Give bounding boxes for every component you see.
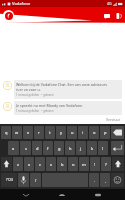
- staticText: b: [61, 162, 64, 167]
- button[interactable]: Shift: [1, 157, 12, 171]
- button[interactable]: Welkom bij de Vodafone Chat. Een van onz…: [3, 80, 122, 99]
- button[interactable]: w: [12, 126, 22, 139]
- button[interactable]: v: [46, 157, 56, 171]
- button[interactable]: Shift right: [112, 157, 124, 171]
- button[interactable]: Backspace: [111, 126, 124, 139]
- staticText: c: [39, 162, 41, 167]
- staticText: e: [27, 130, 30, 135]
- staticText: l: [102, 146, 104, 151]
- staticText: ?123: [6, 178, 13, 182]
- button[interactable]: p: [100, 126, 110, 139]
- button[interactable]: c: [35, 157, 45, 171]
- staticText: a: [12, 146, 15, 151]
- button[interactable]: d: [32, 141, 42, 155]
- staticText: o: [93, 130, 96, 135]
- staticText: n: [72, 162, 75, 167]
- button[interactable]: n: [68, 157, 78, 171]
- staticText: ,: [105, 178, 106, 183]
- staticText: r: [38, 130, 40, 135]
- staticText: Vodafone: [12, 1, 31, 6]
- button[interactable]: y: [56, 126, 66, 139]
- staticText: is er zo voor u.: [16, 87, 41, 92]
- staticText: s: [25, 146, 27, 151]
- button[interactable]: Vodafone home: [3, 10, 14, 21]
- staticText: m: [82, 162, 86, 167]
- button[interactable]: i: [78, 126, 88, 139]
- button[interactable]: h: [65, 141, 75, 155]
- button[interactable]: Chat: [103, 12, 111, 20]
- staticText: v: [50, 162, 53, 167]
- staticText: j: [80, 146, 82, 151]
- button[interactable]: Home: [55, 189, 69, 200]
- staticText: k: [91, 146, 94, 151]
- button[interactable]: Verstuur: [106, 117, 121, 122]
- staticText: 1 minuut geleden • gelezen: [16, 109, 54, 113]
- staticText: Je spreekt nu met Mandy van Vodafone.: [16, 103, 84, 108]
- staticText: p: [104, 130, 107, 135]
- staticText: /: [35, 178, 37, 183]
- staticText: 1 minuut geleden • gelezen: [16, 93, 54, 97]
- button[interactable]: s: [20, 141, 31, 155]
- button[interactable]: x: [24, 157, 34, 171]
- button[interactable]: e: [23, 126, 33, 139]
- button[interactable]: b: [57, 157, 67, 171]
- staticText: w: [15, 130, 19, 135]
- button[interactable]: Je spreekt nu met Mandy van Vodafone.: [3, 101, 122, 115]
- staticText: q: [5, 130, 8, 135]
- button[interactable]: ?123: [1, 173, 17, 187]
- staticText: f: [47, 146, 49, 151]
- staticText: y: [60, 130, 63, 135]
- staticText: u: [71, 130, 74, 135]
- button[interactable]: k: [87, 141, 97, 155]
- button[interactable]: ?: [101, 157, 111, 171]
- button[interactable]: ,: [100, 173, 110, 187]
- button[interactable]: a: [8, 141, 19, 155]
- button[interactable]: Enter: [111, 141, 124, 155]
- button[interactable]: Back: [19, 189, 33, 200]
- button[interactable]: r: [34, 126, 44, 139]
- button[interactable]: f: [43, 141, 53, 155]
- staticText: !: [94, 162, 96, 167]
- button[interactable]: Voice input: [18, 173, 29, 187]
- button[interactable]: l: [98, 141, 108, 155]
- button[interactable]: Emoji: [111, 173, 124, 187]
- button[interactable]: t: [45, 126, 55, 139]
- button[interactable]: u: [67, 126, 77, 139]
- button[interactable]: .: [89, 173, 99, 187]
- button[interactable]: !: [90, 157, 100, 171]
- staticText: g: [58, 146, 61, 151]
- staticText: z: [17, 162, 19, 167]
- button[interactable]: m: [79, 157, 89, 171]
- button[interactable]: o: [89, 126, 99, 139]
- staticText: i: [82, 130, 84, 135]
- button[interactable]: Call: [114, 12, 122, 20]
- staticText: ?: [105, 162, 107, 167]
- staticText: Welkom bij de Vodafone Chat. Een van onz…: [16, 82, 107, 87]
- staticText: 4G: [107, 1, 112, 6]
- button[interactable]: q: [1, 126, 11, 139]
- button[interactable]: Recent apps: [91, 189, 105, 200]
- button[interactable]: /: [30, 173, 41, 187]
- button[interactable]: j: [76, 141, 86, 155]
- staticText: d: [36, 146, 39, 151]
- staticText: .: [94, 178, 95, 183]
- staticText: x: [28, 162, 31, 167]
- staticText: t: [49, 130, 51, 135]
- staticText: h: [69, 146, 72, 151]
- button[interactable]: g: [54, 141, 64, 155]
- button[interactable]: z: [13, 157, 23, 171]
